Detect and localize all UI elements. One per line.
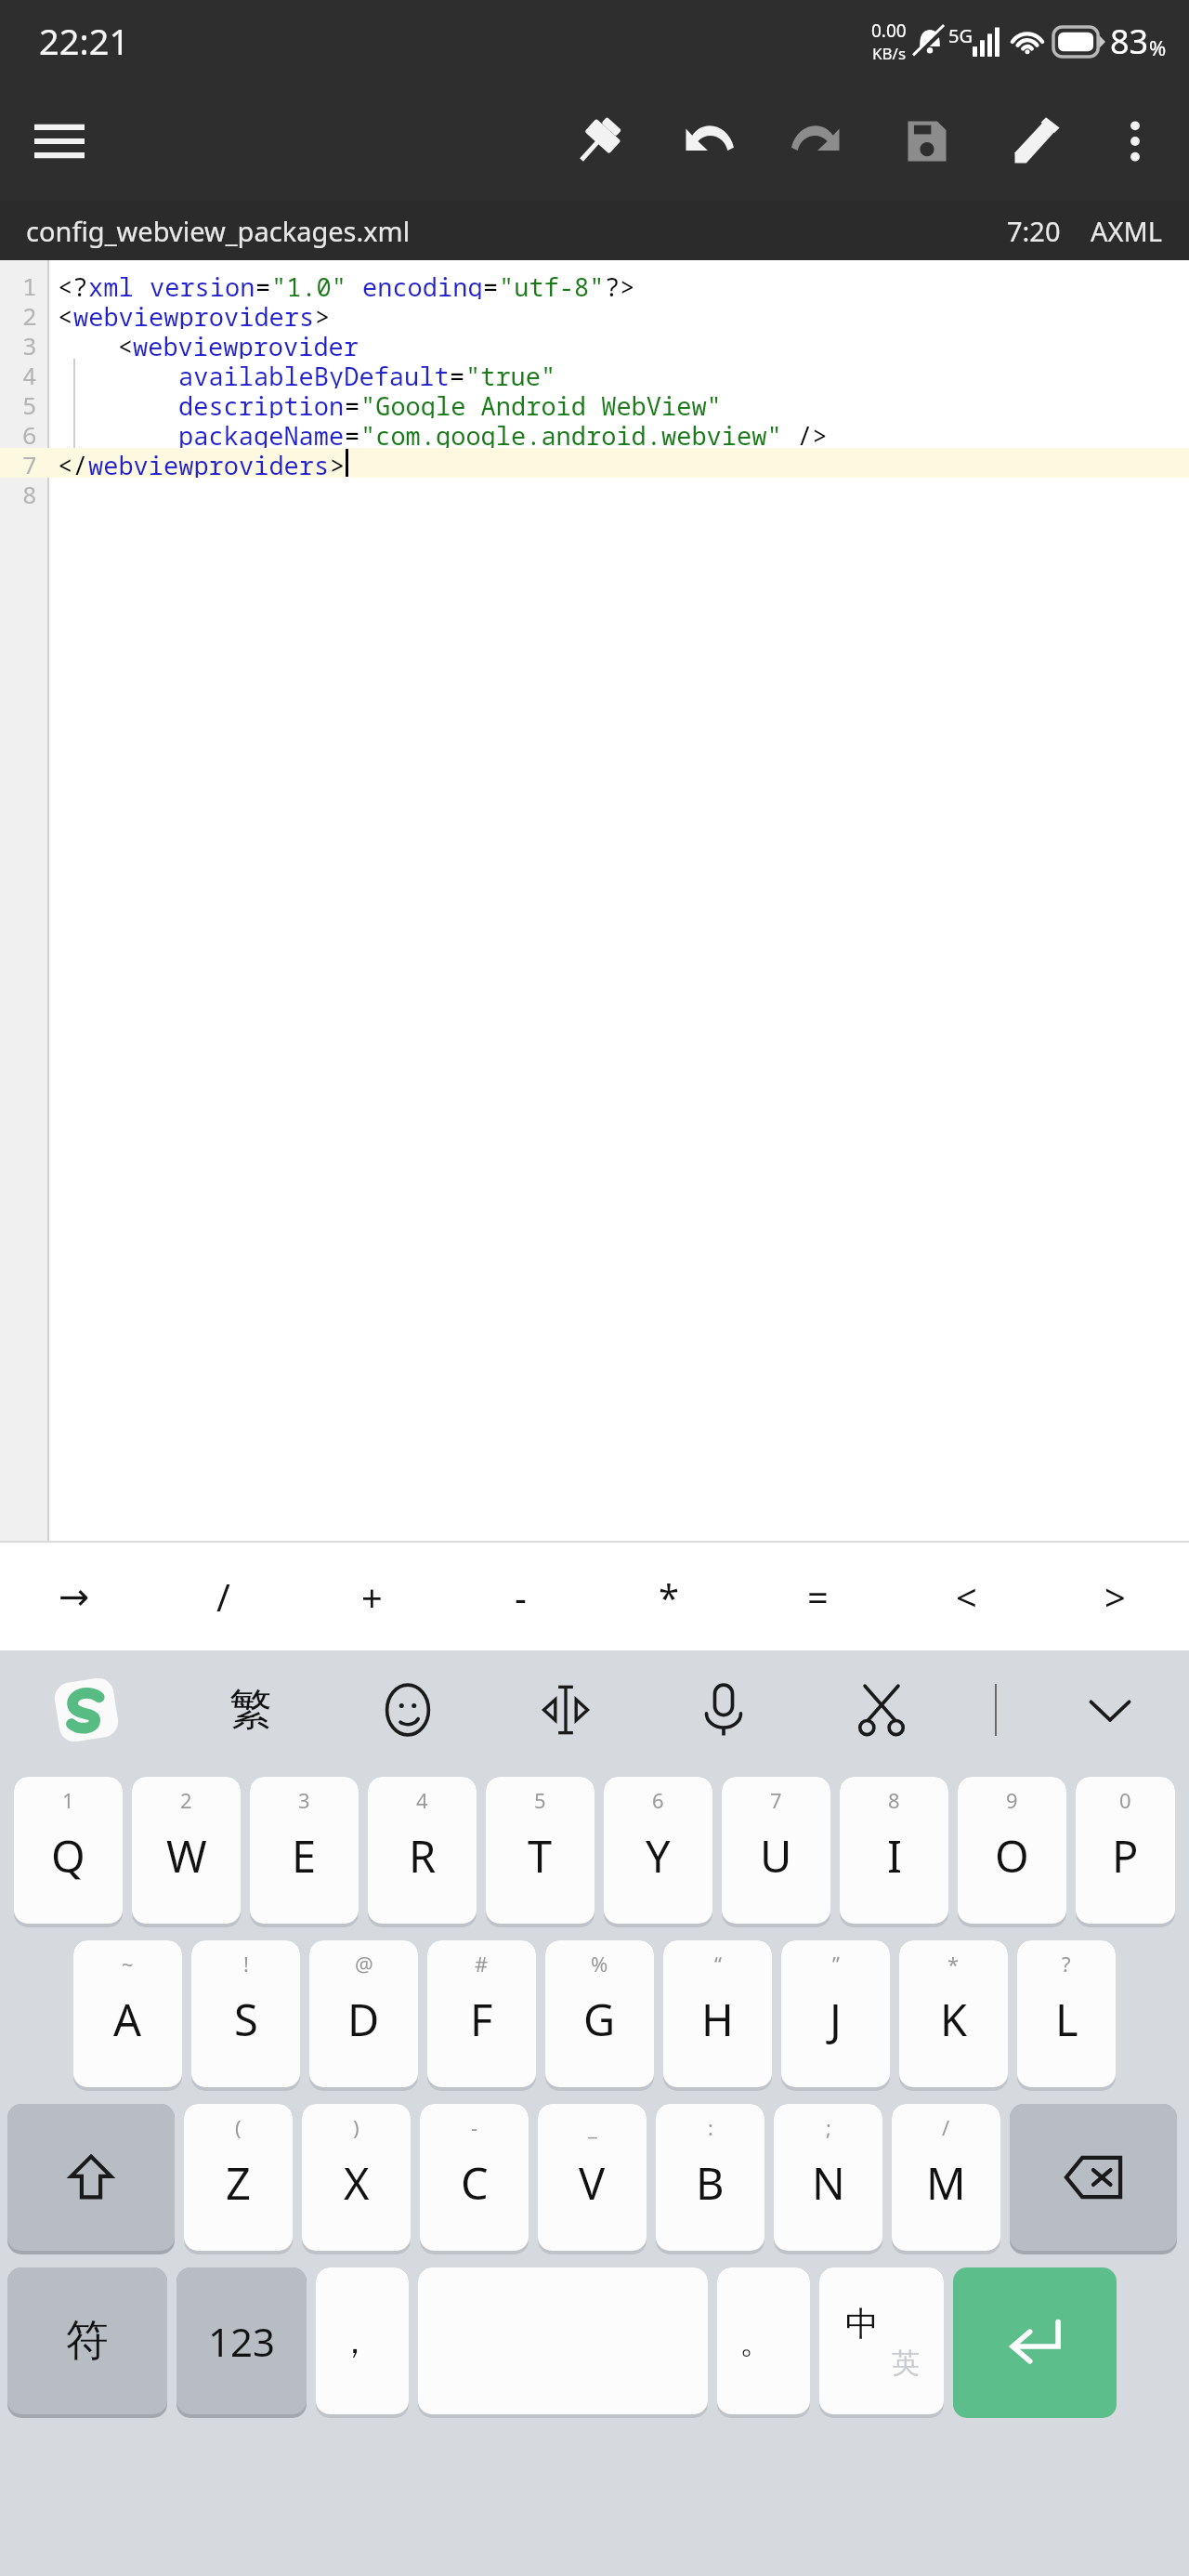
button[interactable]: Numbers [176, 2267, 307, 2418]
button[interactable]: ” [781, 1940, 890, 2091]
button[interactable]: ) [302, 2104, 411, 2254]
staticText: > [1104, 1571, 1126, 1622]
button[interactable]: 6 [604, 1777, 712, 1927]
staticText: K [940, 1990, 968, 2049]
button[interactable]: ? [1017, 1940, 1116, 2091]
button[interactable]: : [656, 2104, 764, 2254]
button[interactable]: 2 [132, 1777, 241, 1927]
button[interactable]: 5 [486, 1777, 594, 1927]
button[interactable]: + [297, 1543, 446, 1650]
button[interactable]: Backspace [1010, 2104, 1177, 2254]
staticText: A [113, 1990, 142, 2049]
staticText: ) [353, 2113, 359, 2141]
staticText: = [345, 388, 360, 418]
button[interactable]: “ [663, 1940, 772, 2091]
staticText: "com.google.android.webview" [360, 418, 782, 448]
button[interactable]: Voice input [645, 1650, 803, 1769]
button[interactable]: @ [309, 1940, 418, 2091]
staticText: webviewproviders [88, 448, 330, 478]
button[interactable]: Move cursor [487, 1650, 645, 1769]
button[interactable]: ( [184, 2104, 293, 2254]
button[interactable]: 9 [958, 1777, 1066, 1927]
staticText: ~ [122, 1950, 134, 1978]
staticText: - [515, 1571, 527, 1622]
staticText: U [760, 1826, 792, 1886]
button[interactable]: Redo [775, 99, 860, 184]
button[interactable]: Pin [555, 99, 641, 184]
button[interactable]: Space [418, 2267, 708, 2418]
staticText: ， [338, 2320, 372, 2362]
staticText: ?> [605, 269, 635, 299]
button[interactable]: Edit [994, 99, 1079, 184]
button[interactable]: Hide keyboard [1031, 1650, 1189, 1769]
staticText: 。 [739, 2320, 773, 2362]
button[interactable]: Menu [15, 97, 104, 186]
button[interactable]: ! [191, 1940, 300, 2091]
staticText: 123 [208, 2315, 276, 2368]
staticText: 符 [66, 2314, 109, 2368]
button[interactable]: Sogou input [0, 1650, 172, 1769]
button[interactable]: * [899, 1940, 1008, 2091]
staticText: % [591, 1950, 608, 1978]
button[interactable]: - [420, 2104, 529, 2254]
staticText: ; [826, 2113, 831, 2141]
button[interactable]: Switch language [819, 2267, 944, 2418]
button[interactable]: ~ [73, 1940, 182, 2091]
button[interactable]: 7 [722, 1777, 830, 1927]
staticText: V [579, 2153, 606, 2213]
button[interactable]: ; [774, 2104, 882, 2254]
button[interactable]: 0 [1076, 1777, 1175, 1927]
button[interactable]: 3 [250, 1777, 359, 1927]
staticText: P [1112, 1826, 1139, 1886]
staticText: AXML [1091, 213, 1163, 249]
staticText: version [150, 269, 255, 299]
button[interactable]: / [149, 1543, 297, 1650]
staticText: </ [58, 448, 88, 478]
staticText: O [995, 1826, 1029, 1886]
button[interactable]: / [892, 2104, 1000, 2254]
button[interactable]: 4 [368, 1777, 477, 1927]
staticText: 4 [22, 359, 37, 388]
button[interactable]: Period [717, 2267, 810, 2418]
staticText: 繁 [229, 1683, 272, 1737]
staticText: = [450, 359, 465, 388]
button[interactable]: 繁 [172, 1650, 329, 1769]
staticText: encoding [362, 269, 483, 299]
staticText: → [59, 1575, 90, 1619]
button[interactable]: Clipboard [803, 1650, 960, 1769]
button[interactable]: Undo [665, 99, 751, 184]
staticText: N [812, 2153, 845, 2213]
button[interactable]: 1 [14, 1777, 123, 1927]
staticText: 5G [948, 23, 973, 48]
button[interactable]: Enter [953, 2267, 1117, 2418]
staticText: availableByDefault [178, 359, 450, 388]
button[interactable]: More options [1092, 99, 1178, 184]
staticText [58, 418, 178, 448]
button[interactable]: → [0, 1543, 149, 1650]
button[interactable]: > [1040, 1543, 1189, 1650]
button[interactable]: 8 [840, 1777, 948, 1927]
staticText: : [708, 2113, 713, 2141]
staticText: / [942, 2113, 950, 2141]
button[interactable]: _ [538, 2104, 647, 2254]
button[interactable]: * [594, 1543, 743, 1650]
staticText: "Google Android WebView" [360, 388, 722, 418]
button[interactable]: Symbols [7, 2267, 167, 2418]
button[interactable]: Comma [316, 2267, 409, 2418]
staticText: 7 [22, 448, 37, 478]
button[interactable]: = [743, 1543, 892, 1650]
staticText: 0.00 [871, 19, 907, 43]
staticText: = [483, 269, 499, 299]
button[interactable]: Save [884, 99, 970, 184]
staticText: _ [588, 2113, 597, 2141]
button[interactable]: Emoji [329, 1650, 487, 1769]
button[interactable]: # [427, 1940, 536, 2091]
staticText: E [292, 1826, 317, 1886]
button[interactable]: Shift [7, 2104, 175, 2254]
button[interactable]: - [446, 1543, 594, 1650]
staticText: # [475, 1950, 489, 1978]
button[interactable]: < [892, 1543, 1040, 1650]
staticText: webviewproviders [73, 299, 315, 329]
button[interactable]: % [545, 1940, 654, 2091]
